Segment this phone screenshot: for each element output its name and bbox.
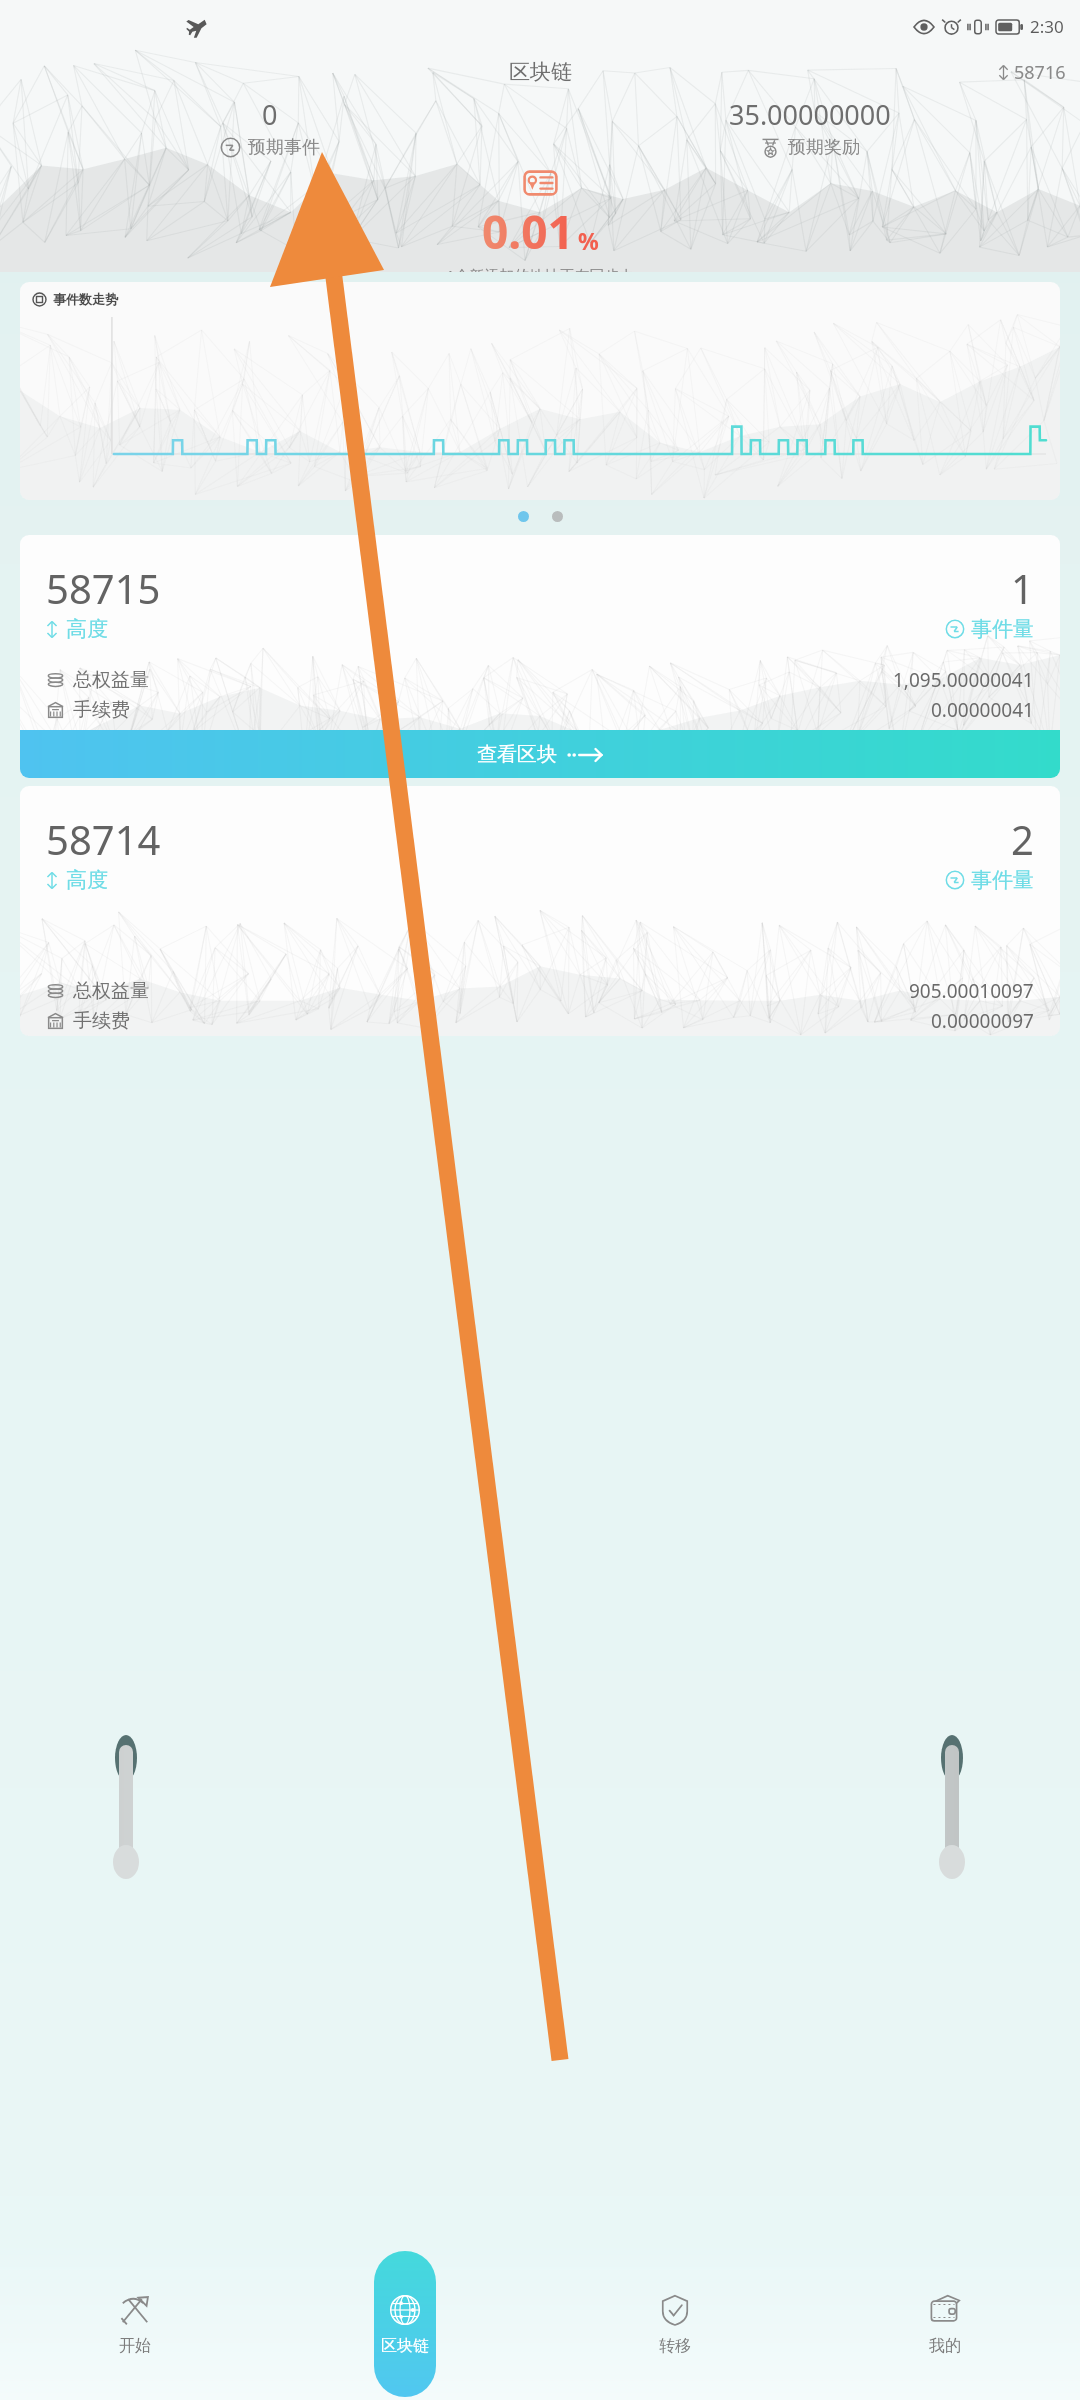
staticText: % — [578, 225, 599, 256]
staticText: 区块链 — [381, 2336, 429, 2356]
staticText: 事件数走势 — [53, 291, 118, 307]
staticText: 总权益量 — [73, 979, 149, 1003]
staticText: 2 — [1011, 812, 1034, 866]
staticText: 预期奖励 — [788, 136, 860, 159]
staticText: 预期事件 — [248, 136, 320, 159]
staticText: 区块链 — [509, 59, 572, 85]
button[interactable]: 开始 — [0, 2248, 270, 2400]
staticText: 1,095.00000041 — [893, 667, 1034, 693]
button[interactable]: 58714 — [20, 786, 1060, 1036]
staticText: 事件量 — [971, 867, 1034, 893]
staticText: 1 — [1011, 561, 1034, 615]
button[interactable]: 0 — [0, 96, 540, 159]
staticText: 0 — [262, 96, 278, 133]
staticText: 总权益量 — [73, 668, 149, 692]
staticText: 905.00010097 — [909, 978, 1034, 1004]
button[interactable]: 转移 — [540, 2248, 810, 2400]
staticText: 58714 — [46, 812, 161, 866]
button[interactable]: 查看区块 — [20, 730, 1060, 778]
staticText: 0.00000097 — [931, 1008, 1034, 1034]
staticText: 查看区块 — [477, 742, 557, 767]
button[interactable]: 58715 — [20, 535, 1060, 778]
staticText: 我的 — [929, 2336, 961, 2356]
staticText: 手续费 — [73, 698, 130, 722]
staticText: 高度 — [66, 867, 108, 893]
staticText: 0.01 — [482, 200, 574, 263]
staticText: 手续费 — [73, 1009, 130, 1033]
button[interactable]: 区块链 — [270, 2248, 540, 2400]
staticText: 开始 — [119, 2336, 151, 2356]
staticText: 58716 — [1014, 60, 1066, 85]
staticText: 0.00000041 — [931, 697, 1034, 723]
staticText: 2:30 — [1030, 15, 1064, 38]
button[interactable]: 事件数走势 — [20, 282, 1060, 500]
staticText: 事件量 — [971, 616, 1034, 642]
staticText: 转移 — [659, 2336, 691, 2356]
button[interactable]: 我的 — [810, 2248, 1080, 2400]
staticText: 35.00000000 — [729, 96, 891, 133]
staticText: 58715 — [46, 561, 161, 615]
staticText: 1个新添加的地址正在同步中 — [446, 265, 635, 272]
button[interactable] — [552, 511, 563, 522]
staticText: 高度 — [66, 616, 108, 642]
button[interactable] — [518, 511, 529, 522]
button[interactable]: 35.00000000 — [540, 96, 1080, 159]
